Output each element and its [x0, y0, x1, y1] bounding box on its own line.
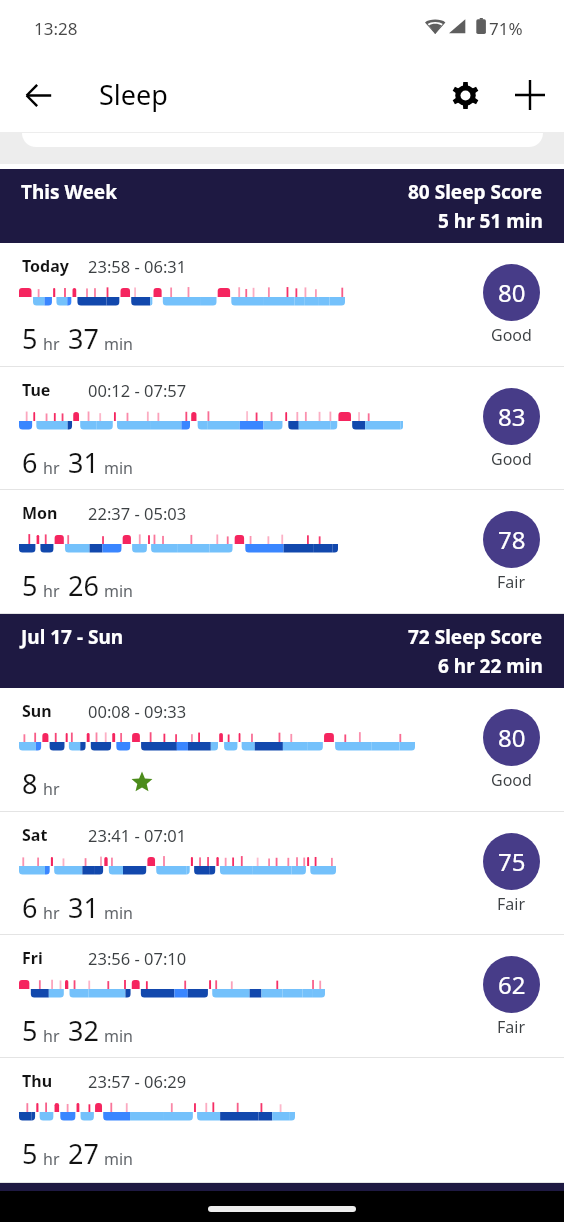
staticText: min — [104, 902, 133, 924]
button[interactable]: Sun — [0, 688, 564, 812]
staticText: 5 hr 51 min — [438, 208, 543, 234]
staticText: Tue — [22, 379, 51, 401]
staticText: Good — [491, 448, 532, 470]
staticText: Fri — [22, 947, 43, 969]
staticText: Mon — [22, 502, 58, 524]
staticText: hr — [43, 1025, 60, 1047]
staticText: Fair — [497, 571, 526, 593]
staticText: 26 — [68, 567, 99, 604]
staticText: 27 — [68, 1135, 99, 1172]
staticText: This Week — [21, 179, 117, 205]
button[interactable]: Fri — [0, 935, 564, 1058]
staticText: Fair — [497, 1016, 526, 1038]
staticText: 6 — [22, 444, 38, 481]
staticText: 71% — [489, 17, 523, 40]
button[interactable]: Jul 17 - Sun — [0, 614, 564, 688]
staticText: min — [104, 1025, 133, 1047]
staticText: 80 — [498, 721, 526, 754]
staticText: hr — [43, 1148, 60, 1170]
staticText: 23:56 - 07:10 — [88, 947, 187, 969]
staticText: 78 — [498, 523, 526, 556]
button[interactable]: Thu — [0, 1058, 564, 1183]
staticText: hr — [43, 902, 60, 924]
button[interactable]: Sat — [0, 812, 564, 935]
staticText: 31 — [68, 444, 99, 481]
staticText: 6 — [22, 889, 38, 926]
staticText: 80 — [498, 276, 526, 309]
staticText: min — [104, 580, 133, 602]
staticText: 62 — [498, 968, 526, 1001]
staticText: 37 — [68, 320, 99, 357]
button[interactable]: Settings — [441, 71, 489, 119]
staticText: hr — [43, 333, 60, 355]
staticText: 6 hr 22 min — [438, 653, 543, 679]
staticText: 5 — [22, 567, 38, 604]
staticText: 83 — [498, 400, 526, 433]
staticText: Sleep — [99, 76, 168, 113]
staticText: 5 — [22, 320, 38, 357]
staticText: Fair — [497, 893, 526, 915]
staticText: 22:37 - 05:03 — [88, 502, 187, 524]
staticText: Today — [22, 255, 69, 277]
staticText: 13:28 — [34, 17, 78, 40]
button[interactable]: Tue — [0, 367, 564, 490]
staticText: hr — [43, 457, 60, 479]
staticText: Sun — [22, 700, 52, 722]
button[interactable]: Add — [506, 71, 554, 119]
staticText: Jul 17 - Sun — [21, 624, 124, 650]
button[interactable]: Today — [0, 243, 564, 367]
staticText: 23:58 - 06:31 — [88, 255, 187, 277]
button[interactable]: Back — [14, 71, 62, 119]
staticText: 5 — [22, 1012, 38, 1049]
staticText: min — [104, 333, 133, 355]
staticText: Good — [491, 324, 532, 346]
staticText: Good — [491, 769, 532, 791]
staticText: 75 — [498, 845, 526, 878]
staticText: 31 — [68, 889, 99, 926]
staticText: min — [104, 1148, 133, 1170]
staticText: 72 Sleep Score — [408, 624, 543, 650]
staticText: min — [104, 457, 133, 479]
staticText: 00:12 - 07:57 — [88, 379, 187, 401]
staticText: 32 — [68, 1012, 99, 1049]
staticText: Thu — [22, 1070, 53, 1092]
staticText: 5 — [22, 1135, 38, 1172]
staticText: 23:57 - 06:29 — [88, 1070, 187, 1092]
staticText: 80 Sleep Score — [408, 179, 543, 205]
button[interactable]: Mon — [0, 490, 564, 614]
staticText: hr — [43, 580, 60, 602]
staticText: 23:41 - 07:01 — [88, 824, 187, 846]
staticText: hr — [43, 778, 60, 800]
staticText: 00:08 - 09:33 — [88, 700, 187, 722]
button[interactable]: This Week — [0, 169, 564, 243]
staticText: Sat — [22, 824, 48, 846]
staticText: 8 — [22, 765, 38, 802]
